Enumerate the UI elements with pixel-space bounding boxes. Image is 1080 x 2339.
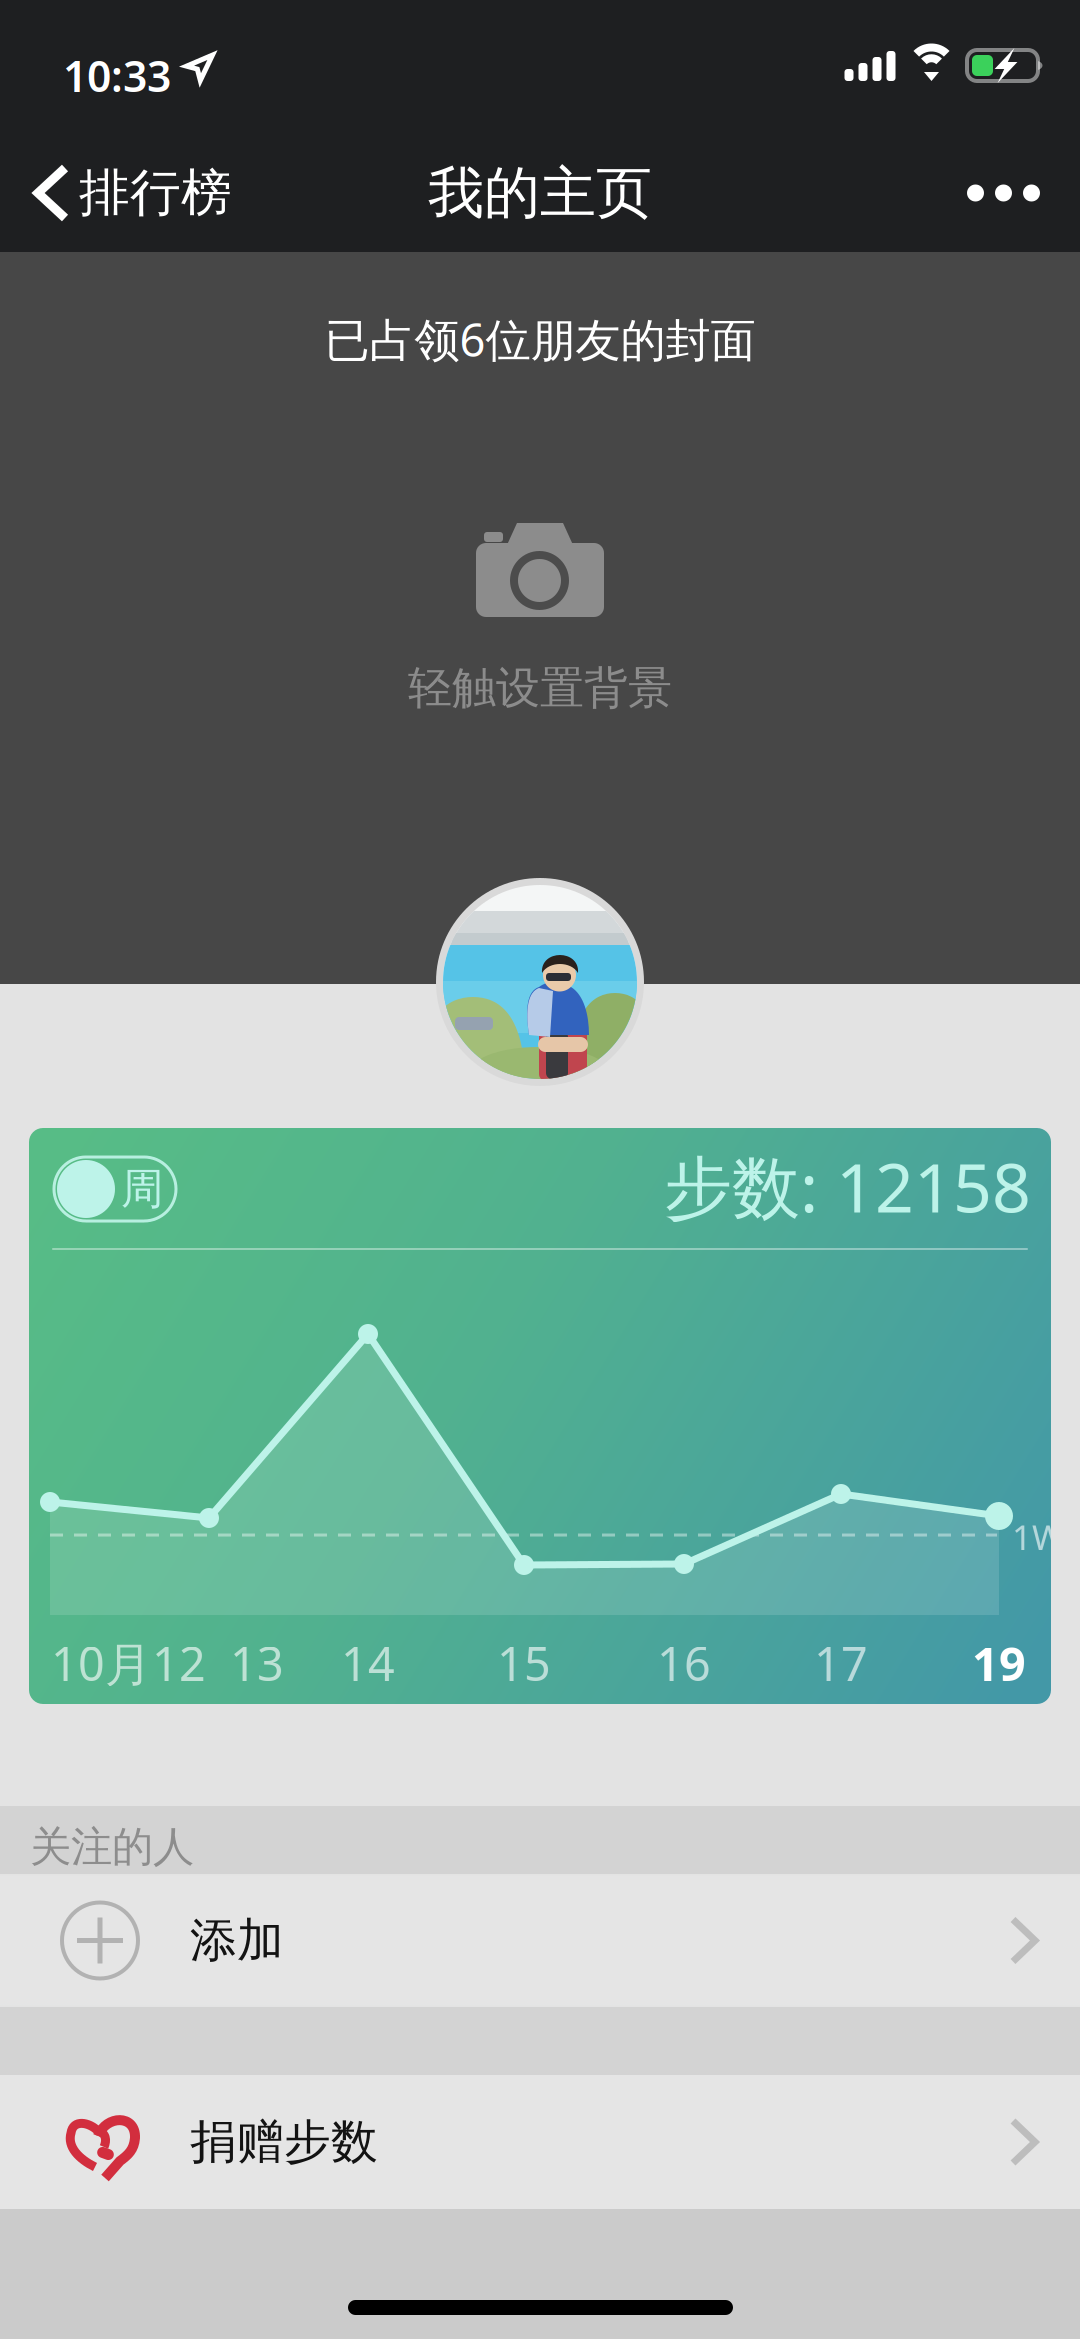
- staticText: 16: [657, 1632, 711, 1694]
- staticText: 周: [121, 1163, 164, 1215]
- button[interactable]: More: [927, 154, 1080, 231]
- staticText: 排行榜: [79, 162, 232, 224]
- staticText: 15: [497, 1632, 551, 1694]
- staticText: 已占领6位朋友的封面: [324, 309, 755, 369]
- staticText: 我的主页: [428, 159, 652, 227]
- staticText: 17: [814, 1632, 868, 1694]
- staticText: 捐赠步数: [190, 2113, 378, 2171]
- button[interactable]: 排行榜: [0, 142, 250, 244]
- button[interactable]: 添加: [0, 1874, 1080, 2007]
- staticText: 步数: 12158: [664, 1141, 1031, 1231]
- button[interactable]: 捐赠步数: [0, 2075, 1080, 2209]
- staticText: 轻触设置背景: [408, 661, 672, 715]
- button[interactable]: Profile photo: [436, 878, 644, 1086]
- staticText: 13: [230, 1632, 284, 1694]
- staticText: 添加: [190, 1912, 284, 1969]
- button[interactable]: 周: [54, 1157, 176, 1221]
- staticText: 1W: [1012, 1514, 1064, 1560]
- staticText: 关注的人: [30, 1822, 194, 1872]
- staticText: 10:33: [63, 47, 171, 104]
- staticText: 19: [972, 1632, 1026, 1694]
- staticText: 14: [341, 1632, 395, 1694]
- staticText: 10月12: [51, 1632, 206, 1694]
- button[interactable]: 已占领6位朋友的封面: [0, 252, 1080, 984]
